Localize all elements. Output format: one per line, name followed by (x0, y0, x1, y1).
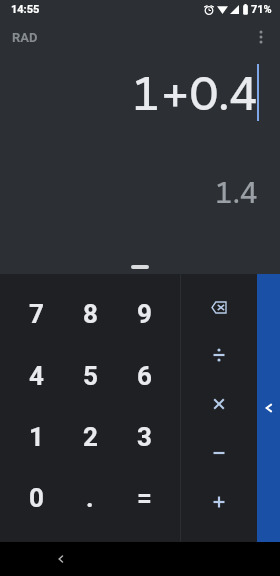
button[interactable]: 1+0.4 (132, 65, 258, 123)
staticText: 5 (83, 361, 98, 391)
button[interactable]: 5 (63, 345, 117, 406)
button[interactable]: 6 (117, 345, 171, 406)
button[interactable]: Drag handle (131, 265, 149, 269)
staticText: 2 (83, 422, 98, 452)
staticText: 1.4 (215, 175, 258, 211)
staticText: . (86, 483, 94, 513)
button[interactable]: 9 (117, 283, 171, 345)
staticText: 8 (83, 299, 98, 329)
staticText: 9 (137, 299, 152, 329)
button[interactable]: 8 (63, 283, 117, 345)
button[interactable]: More options (242, 18, 280, 56)
staticText: 6 (137, 361, 152, 391)
button[interactable]: times (181, 379, 257, 428)
button[interactable]: 4 (9, 345, 63, 406)
button[interactable]: plus (181, 477, 257, 526)
button[interactable]: divide (181, 331, 257, 379)
staticText: 71% (251, 3, 272, 16)
button[interactable]: backspace (181, 283, 257, 331)
button[interactable]: = (117, 467, 171, 528)
staticText: 0 (29, 483, 44, 513)
button[interactable]: 0 (9, 467, 63, 528)
staticText: 1 (29, 422, 44, 452)
staticText: 4 (29, 361, 44, 391)
button[interactable]: Expand panel (263, 402, 275, 414)
button[interactable]: . (63, 467, 117, 528)
staticText: 7 (29, 299, 44, 329)
staticText: 14:55 (11, 3, 40, 16)
staticText: 3 (137, 422, 152, 452)
button[interactable]: 7 (9, 283, 63, 345)
staticText: = (137, 483, 152, 513)
button[interactable]: minus (181, 428, 257, 477)
button[interactable]: 3 (117, 406, 171, 467)
button[interactable]: Back (50, 548, 72, 570)
button[interactable]: 2 (63, 406, 117, 467)
button[interactable]: RAD (0, 26, 46, 49)
button[interactable]: 1 (9, 406, 63, 467)
